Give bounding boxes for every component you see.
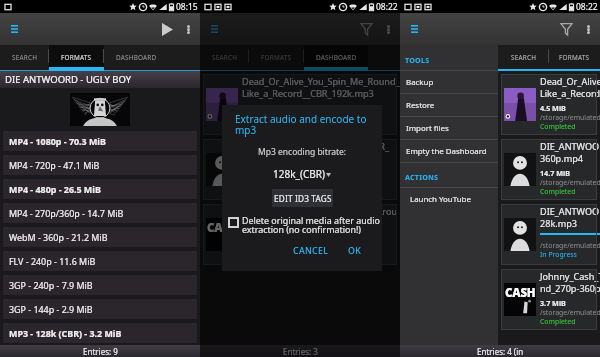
staticText: ACTIONS (405, 172, 439, 182)
staticText: FORMATS (559, 53, 590, 62)
button[interactable]: Open navigation drawer (402, 13, 426, 45)
staticText: 3.7 MiB (540, 298, 566, 308)
staticText: 08:22 (376, 1, 398, 13)
staticText: 08:22 (576, 1, 598, 13)
staticText: DIE_ANTWOO (540, 140, 600, 152)
staticText: SEARCH (12, 53, 38, 62)
button[interactable]: Empty the Dashboard (400, 140, 498, 162)
button[interactable]: DIE_ANTWOO (501, 204, 597, 265)
staticText: /storage/emulated/ (540, 241, 600, 250)
button[interactable]: FORMATS (549, 45, 600, 71)
staticText: Completed (540, 122, 576, 131)
button[interactable]: More options (577, 13, 599, 45)
staticText: CASH (505, 285, 536, 301)
button[interactable]: MP4 - 1080p - 70.3 MiB (3, 131, 197, 151)
staticText: Completed (540, 187, 576, 196)
staticText: In Progress (540, 250, 577, 259)
button[interactable]: MP3 - 128k (CBR) - 3.2 MiB (3, 323, 197, 343)
staticText: Like_a_Record__CBR_192k.mp3 (242, 87, 374, 99)
staticText: Backup (406, 77, 434, 88)
button[interactable]: 3GP - 144p - 2.9 MiB (3, 299, 197, 319)
button[interactable]: SEARCH (200, 45, 249, 71)
staticText: nd_270p-360p (540, 282, 600, 294)
staticText: Entries: 3 (283, 346, 318, 357)
staticText: SEARCH (212, 53, 238, 62)
staticText: /storage/emulated/ (540, 178, 600, 187)
button[interactable]: FORMATS (49, 45, 104, 71)
staticText: 3GP - 144p - 2.9 MiB (9, 303, 93, 315)
button[interactable]: Filter (354, 13, 378, 45)
button[interactable]: Dead_Or_Alive (501, 74, 597, 135)
button[interactable]: MP4 - 720p - 47.1 MiB (3, 155, 197, 175)
staticText: TOOLS (405, 55, 430, 65)
button[interactable]: FORMATS (249, 45, 304, 71)
button[interactable]: OK (345, 242, 365, 260)
staticText: Dead_Or_Alive_You_Spin_Me_Round_ (242, 75, 400, 87)
staticText: Entries: 9 (83, 346, 118, 357)
staticText: 08:15 (176, 1, 198, 13)
button[interactable]: More options (377, 13, 399, 45)
staticText: MP4 - 480p - 26.5 MiB (9, 183, 101, 195)
staticText: nd_270p-360p.mp4 (242, 217, 325, 229)
staticText: Restore (406, 100, 435, 111)
button[interactable]: Restore (400, 94, 498, 116)
staticText: DIE_ANTWOO (540, 205, 600, 217)
button[interactable]: SEARCH (498, 45, 549, 71)
button[interactable]: EDIT ID3 TAGS (272, 189, 333, 207)
staticText: MP4 - 270p/360p - 14.7 MiB (9, 207, 124, 219)
staticText: SEARCH (511, 53, 537, 62)
staticText: Entries: 4 (in (477, 346, 524, 357)
button[interactable]: Delete original media after audio (222, 213, 382, 235)
button[interactable]: MP4 - 480p - 26.5 MiB (3, 179, 197, 199)
button[interactable]: DASHBOARD (104, 45, 168, 71)
button[interactable]: DASHBOARD (304, 45, 368, 71)
staticText: Dead_Or_Alive (540, 75, 600, 87)
staticText: Empty the Dashboard (406, 146, 487, 157)
button[interactable]: CANCEL (290, 242, 332, 260)
button[interactable]: 128k_(CBR) (273, 167, 331, 181)
staticText: /storage/emulated/ (540, 113, 600, 122)
staticText: CASH (207, 220, 238, 236)
staticText: DASHBOARD (116, 53, 157, 62)
button[interactable]: Play (156, 13, 178, 45)
staticText: Launch YouTube (410, 194, 471, 205)
staticText: MP4 - 1080p - 70.3 MiB (9, 135, 106, 147)
staticText: FORMATS (61, 53, 92, 62)
staticText: DASHBOARD (316, 53, 357, 62)
button[interactable]: Open navigation drawer (202, 13, 226, 45)
button[interactable]: Filter (554, 13, 578, 45)
button[interactable]: FLV - 240p - 11.6 MiB (3, 251, 197, 271)
staticText: 3GP - 240p - 7.9 MiB (9, 279, 93, 291)
staticText: 14.7 MiB (540, 168, 570, 178)
button[interactable]: Import files (400, 117, 498, 139)
staticText: FLV - 240p - 11.6 MiB (9, 255, 96, 267)
button[interactable]: MP4 - 270p/360p - 14.7 MiB (3, 203, 197, 223)
button[interactable]: SEARCH (0, 45, 49, 71)
staticText: 360p.mp4 (540, 152, 583, 164)
staticText: MP4 - 720p - 47.1 MiB (9, 159, 100, 171)
staticText: MP3 - 128k (CBR) - 3.2 MiB (9, 327, 122, 339)
staticText: Like_a_Record_ (540, 87, 600, 99)
staticText: EDIT ID3 TAGS (274, 193, 332, 204)
staticText: DIE ANTWOORD - UGLY BOY (5, 73, 132, 86)
button[interactable]: Backup (400, 71, 498, 93)
button[interactable]: DIE_ANTWOO (501, 139, 597, 200)
staticText: Completed (540, 317, 576, 326)
staticText: extraction (no confirmation!) (242, 223, 361, 235)
button[interactable]: WebM - 360p - 21.2 MiB (3, 227, 197, 247)
button[interactable]: Launch YouTube (400, 188, 498, 210)
staticText: 4.5 MiB (540, 103, 566, 113)
staticText: Extract audio and encode to (235, 112, 367, 126)
staticText: DIE_ANTWOORD_-_Ugly_Boy_CBR_ (242, 140, 389, 152)
staticText: Mp3 encoding bitrate: (258, 146, 347, 158)
staticText: OK (348, 245, 362, 257)
staticText: Johnny_Cash_T (540, 270, 600, 282)
button[interactable]: CASH (501, 269, 597, 330)
button[interactable]: More options (177, 13, 199, 45)
staticText: Import files (406, 123, 449, 134)
button[interactable]: Open navigation drawer (2, 13, 26, 45)
staticText: Delete original media after audio (242, 214, 380, 226)
staticText: Johnny_Cash_The_Man_Comes_Arou (242, 205, 398, 217)
button[interactable]: 3GP - 240p - 7.9 MiB (3, 275, 197, 295)
staticText: WebM - 360p - 21.2 MiB (9, 231, 108, 243)
